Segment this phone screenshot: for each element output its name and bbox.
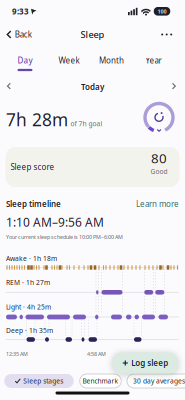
staticText: Month bbox=[99, 55, 124, 66]
staticText: 80 bbox=[151, 149, 167, 167]
staticText: Good bbox=[150, 167, 167, 176]
staticText: Year bbox=[145, 55, 161, 66]
staticText: of 7h goal bbox=[70, 119, 102, 128]
button[interactable]: Sleep stages bbox=[4, 374, 74, 388]
button[interactable]: Benchmark bbox=[80, 374, 121, 388]
staticText: Log sleep bbox=[131, 358, 168, 368]
button[interactable]: Sleep score bbox=[5, 147, 179, 187]
staticText: Light · 4h 25m bbox=[6, 303, 51, 311]
staticText: 30 day averages bbox=[133, 377, 185, 385]
button[interactable]: Day bbox=[11, 54, 39, 67]
button[interactable]: Year bbox=[139, 54, 167, 67]
staticText: 100 bbox=[157, 8, 166, 15]
button[interactable]: Week bbox=[55, 54, 83, 67]
button[interactable]: 30 day averages bbox=[127, 374, 185, 388]
staticText: Benchmark bbox=[82, 377, 118, 385]
button[interactable]: Previous day bbox=[6, 82, 13, 91]
staticText: 12:35 AM bbox=[6, 350, 28, 358]
staticText: Awake · 1h 18m bbox=[6, 254, 57, 263]
button[interactable]: Next day bbox=[171, 82, 178, 91]
staticText: 1:10 AM–9:56 AM bbox=[6, 214, 104, 230]
staticText: Day bbox=[17, 55, 32, 66]
button[interactable]: Log sleep bbox=[113, 352, 178, 373]
staticText: Sleep score bbox=[10, 162, 54, 172]
staticText: REM · 1h 27m bbox=[6, 278, 50, 287]
button[interactable]: Month bbox=[96, 54, 126, 67]
button[interactable]: Back bbox=[4, 27, 34, 41]
staticText: 9:33 bbox=[12, 6, 29, 17]
staticText: Sleep stages bbox=[23, 377, 63, 385]
staticText: 7h 28m bbox=[6, 108, 68, 131]
staticText: Learn more bbox=[136, 199, 179, 209]
staticText: Today bbox=[81, 82, 104, 92]
staticText: Your current sleep schedule is 10:00 PM–… bbox=[6, 233, 123, 241]
staticText: Back bbox=[15, 29, 32, 40]
staticText: Week bbox=[58, 55, 79, 66]
button[interactable]: Learn more bbox=[136, 199, 179, 209]
staticText: Deep · 1h 35m bbox=[6, 326, 53, 335]
staticText: Sleep timeline bbox=[6, 199, 61, 209]
staticText: Sleep bbox=[80, 28, 104, 41]
button[interactable]: More options bbox=[161, 30, 173, 38]
staticText: 4:58 AM bbox=[87, 350, 106, 358]
